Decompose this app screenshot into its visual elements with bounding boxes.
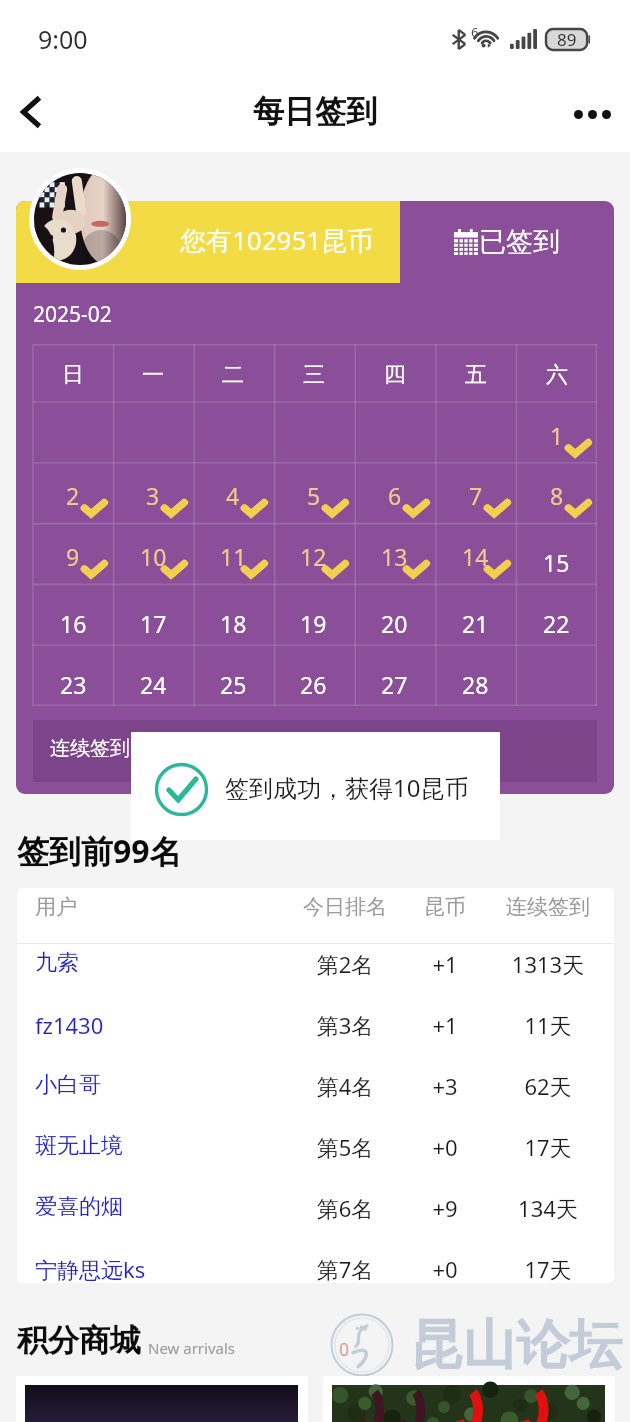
staticText: 11天 (482, 1010, 614, 1040)
staticText: 11 (220, 541, 247, 572)
staticText: 6 (388, 480, 402, 511)
staticText: 第4名 (282, 1071, 408, 1101)
staticText: 积分商城 (17, 1321, 141, 1360)
staticText: 一 (142, 361, 164, 389)
staticText: 28 (462, 669, 489, 700)
staticText: +0 (408, 1254, 482, 1283)
staticText: 17天 (482, 1132, 614, 1162)
staticText: 7 (469, 480, 483, 511)
staticText: 4 (226, 480, 240, 511)
staticText: 8 (550, 480, 564, 511)
staticText: 18 (220, 608, 247, 639)
staticText: 您有102951昆币 (180, 222, 374, 258)
button[interactable]: 宁静思远ks (17, 1249, 614, 1283)
button[interactable]: 爱喜的烟 (17, 1188, 614, 1249)
staticText: 14 (462, 541, 489, 572)
staticText: 17 (140, 608, 167, 639)
staticText: 昆币 (408, 894, 482, 920)
staticText: 25 (220, 669, 247, 700)
staticText: 第6名 (282, 1193, 408, 1223)
staticText: 四 (384, 361, 406, 389)
staticText: 22 (543, 608, 570, 639)
staticText: 三 (303, 361, 325, 389)
button[interactable]: fz1430 (17, 1005, 614, 1066)
staticText: 19 (300, 608, 327, 639)
staticText: 签到前99名 (17, 829, 182, 873)
staticText: 9 (66, 541, 80, 572)
staticText: 二 (222, 361, 244, 389)
staticText: 用户 (35, 894, 282, 920)
button[interactable]: 九索 (17, 944, 614, 1005)
staticText: 1 (550, 420, 564, 451)
staticText: +9 (408, 1193, 482, 1223)
staticText: 20 (381, 608, 408, 639)
staticText: 第2名 (282, 949, 408, 979)
staticText: 今日排名 (282, 894, 408, 920)
staticText: 昆山论坛 (410, 1312, 622, 1379)
staticText: +3 (408, 1071, 482, 1101)
staticText: 2025-02 (33, 300, 112, 329)
button[interactable] (323, 1376, 615, 1422)
button[interactable] (16, 1376, 308, 1422)
staticText: 连续签到 (482, 894, 614, 920)
staticText: 24 (140, 669, 167, 700)
staticText: 13 (381, 541, 408, 572)
staticText: 小白哥 (35, 1071, 282, 1099)
staticText: 宁静思远ks (35, 1254, 282, 1283)
button[interactable]: Back (0, 76, 60, 152)
staticText: 15 (543, 547, 570, 578)
staticText: 62天 (482, 1071, 614, 1101)
staticText: 斑无止境 (35, 1132, 282, 1160)
staticText: 签到成功，获得10昆币 (225, 771, 469, 804)
button[interactable]: 小白哥 (17, 1066, 614, 1127)
staticText: +0 (408, 1132, 482, 1162)
button[interactable]: 斑无止境 (17, 1127, 614, 1188)
staticText: 3 (146, 480, 160, 511)
staticText: 五 (465, 361, 487, 389)
staticText: 16 (60, 608, 87, 639)
staticText: 第7名 (282, 1254, 408, 1283)
staticText: +1 (408, 1010, 482, 1040)
staticText: 2 (66, 480, 80, 511)
staticText: 已签到 (479, 225, 560, 259)
staticText: 每日签到 (253, 92, 377, 131)
staticText: 89 (557, 28, 577, 49)
staticText: 134天 (482, 1193, 614, 1223)
staticText: 六 (546, 361, 568, 389)
staticText: New arrivals (148, 1338, 236, 1358)
staticText: 10 (140, 541, 167, 572)
staticText: 爱喜的烟 (35, 1193, 282, 1221)
button[interactable]: More options (555, 76, 630, 152)
staticText: 第5名 (282, 1132, 408, 1162)
button[interactable]: 已签到 (400, 201, 614, 283)
staticText: 27 (381, 669, 408, 700)
staticText: 26 (300, 669, 327, 700)
staticText: 5 (307, 480, 321, 511)
staticText: 日 (62, 361, 84, 389)
staticText: 17天 (482, 1254, 614, 1283)
staticText: 6 (471, 23, 479, 41)
staticText: +1 (408, 949, 482, 979)
staticText: 第3名 (282, 1010, 408, 1040)
staticText: fz1430 (35, 1010, 282, 1040)
staticText: 12 (300, 541, 327, 572)
staticText: 九索 (35, 949, 282, 977)
staticText: 9:00 (38, 22, 88, 56)
staticText: 1313天 (482, 949, 614, 979)
staticText: 23 (60, 669, 87, 700)
staticText: 连续签到14天 (50, 734, 173, 761)
staticText: 21 (462, 608, 489, 639)
